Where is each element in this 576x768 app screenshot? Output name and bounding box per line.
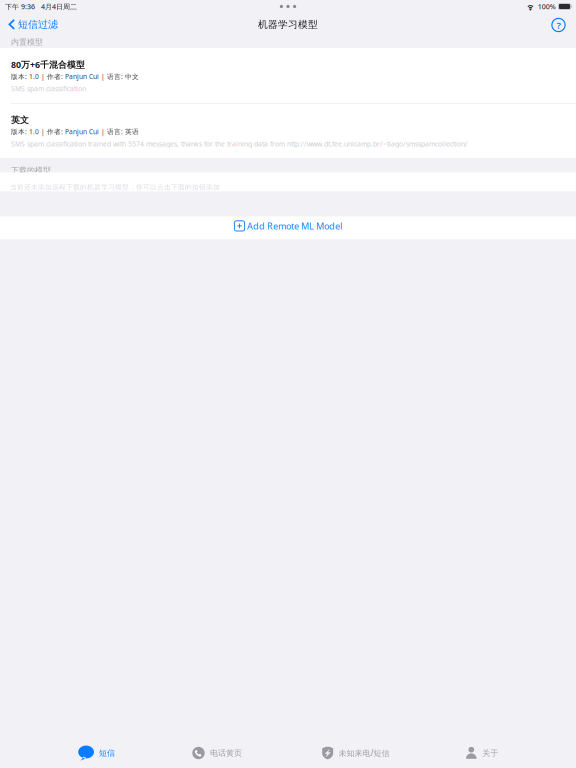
staticText: 当前还未添加远程下载的机器学习模型，你可以点击下面的按钮添加 xyxy=(10,183,220,191)
button[interactable]: 短信过滤 xyxy=(2,14,67,35)
staticText: 4月4日周二 xyxy=(41,2,77,11)
staticText: SMS spam classification xyxy=(11,84,86,93)
button[interactable]: Add Remote ML Model xyxy=(0,216,576,239)
staticText: 电话黄页 xyxy=(210,748,242,758)
staticText: 短信过滤 xyxy=(18,18,58,31)
staticText: 100% xyxy=(538,2,556,11)
staticText: 版本: 1.0 | 作者: Panjun Cui | 语言: 英语 xyxy=(11,127,139,136)
staticText: 下载的模型 xyxy=(11,165,51,175)
staticText: 下午 9:36 xyxy=(5,2,35,11)
staticText: 机器学习模型 xyxy=(258,18,318,31)
staticText: 内置模型 xyxy=(11,37,43,47)
staticText: 未知来电/短信 xyxy=(338,748,389,758)
staticText: Add Remote ML Model xyxy=(247,220,342,232)
staticText: 短信 xyxy=(99,748,115,758)
button[interactable]: 短信 xyxy=(74,738,119,764)
staticText: 80万+6千混合模型 xyxy=(11,58,85,70)
button[interactable]: 未知来电/短信 xyxy=(318,739,393,764)
button[interactable]: 电话黄页 xyxy=(188,739,246,763)
staticText: ? xyxy=(556,18,560,32)
button[interactable]: 关于 xyxy=(461,739,502,763)
button[interactable]: 帮助 xyxy=(543,13,574,35)
staticText: 英文 xyxy=(11,114,29,126)
staticText: SMS spam classification trained with 557… xyxy=(11,139,468,148)
staticText: 版本: 1.0 | 作者: Panjun Cui | 语言: 中文 xyxy=(11,72,139,81)
staticText: 关于 xyxy=(482,748,498,758)
